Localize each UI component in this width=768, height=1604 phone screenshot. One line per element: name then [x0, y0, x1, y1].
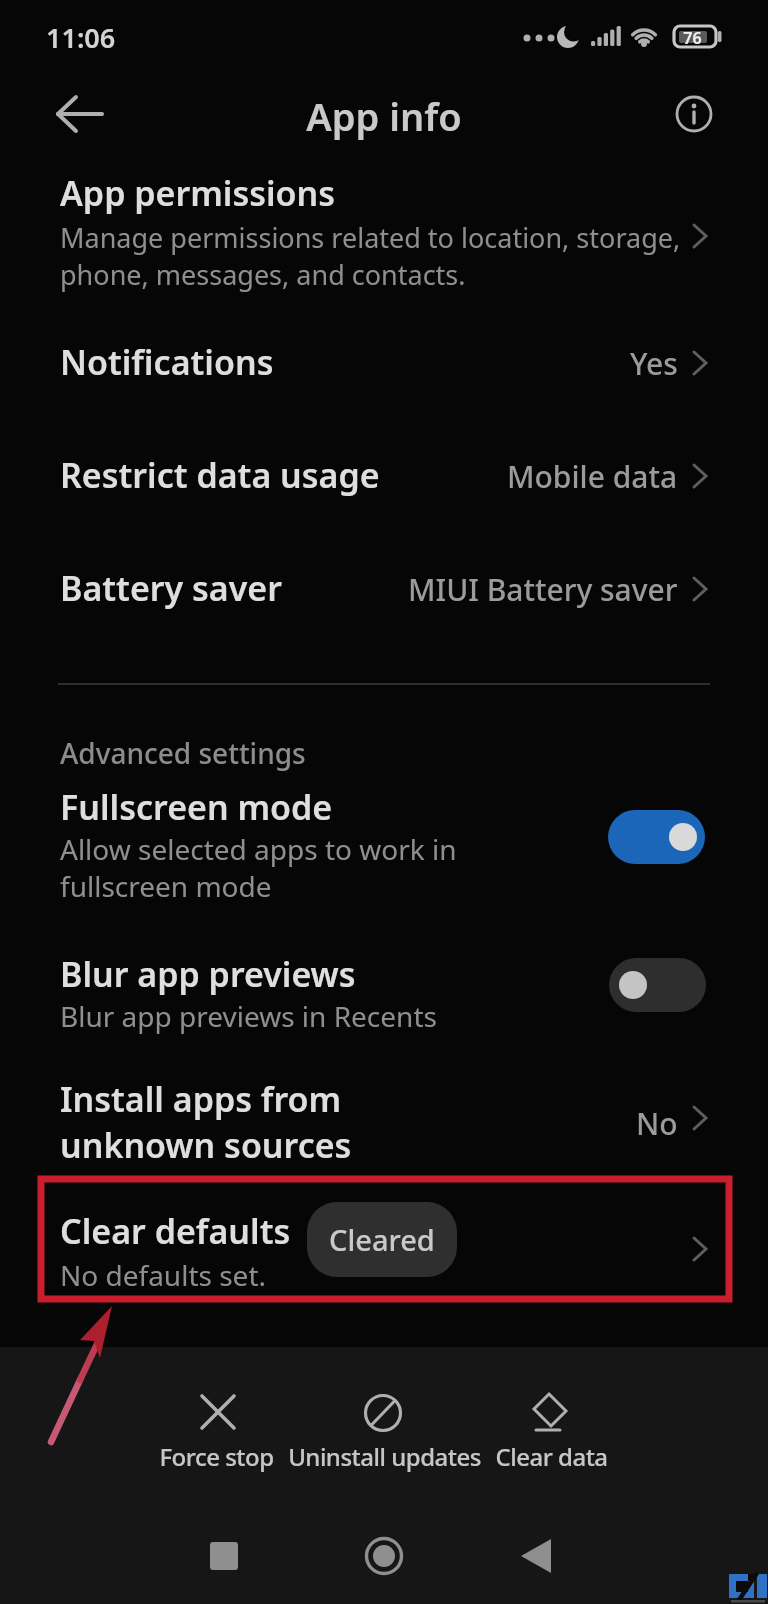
staticText: 11:06: [46, 19, 116, 56]
staticText: Mobile data: [507, 456, 678, 497]
staticText: Allow selected apps to work in fullscree…: [60, 830, 457, 905]
button[interactable]: [40, 84, 120, 144]
staticText: No: [636, 1103, 678, 1144]
button[interactable]: [668, 88, 722, 142]
staticText: Cleared: [329, 1220, 435, 1259]
button[interactable]: [0, 545, 768, 637]
staticText: App permissions: [60, 170, 336, 216]
staticText: Install apps from unknown sources: [60, 1076, 352, 1168]
button[interactable]: [0, 432, 768, 524]
staticText: Notifications: [60, 339, 274, 385]
button[interactable]: [506, 1528, 566, 1584]
button[interactable]: [608, 810, 705, 864]
button[interactable]: [195, 1528, 255, 1584]
staticText: MIUI Battery saver: [408, 569, 678, 610]
staticText: Uninstall updates: [288, 1440, 481, 1473]
staticText: Fullscreen mode: [60, 784, 333, 830]
button[interactable]: [0, 770, 768, 902]
staticText: Advanced settings: [60, 734, 306, 772]
button[interactable]: [0, 160, 768, 300]
button[interactable]: [609, 958, 706, 1012]
button[interactable]: [41, 1179, 729, 1299]
staticText: Yes: [630, 343, 678, 384]
staticText: Blur app previews in Recents: [60, 997, 437, 1035]
button[interactable]: [0, 936, 768, 1032]
staticText: App info: [306, 90, 462, 142]
staticText: Force stop: [159, 1440, 274, 1473]
button[interactable]: [0, 1062, 768, 1166]
staticText: No defaults set.: [60, 1256, 266, 1294]
button[interactable]: [0, 320, 768, 412]
staticText: Clear defaults: [60, 1208, 291, 1254]
staticText: Blur app previews: [60, 951, 356, 997]
staticText: 76: [683, 27, 702, 49]
staticText: Clear data: [495, 1440, 608, 1473]
staticText: Manage permissions related to location, …: [60, 219, 681, 293]
button[interactable]: [150, 1385, 285, 1475]
button[interactable]: [485, 1385, 620, 1475]
button[interactable]: [354, 1528, 414, 1584]
staticText: Battery saver: [60, 565, 282, 611]
button[interactable]: Cleared: [307, 1202, 457, 1277]
staticText: Restrict data usage: [60, 452, 380, 498]
button[interactable]: [295, 1385, 475, 1475]
